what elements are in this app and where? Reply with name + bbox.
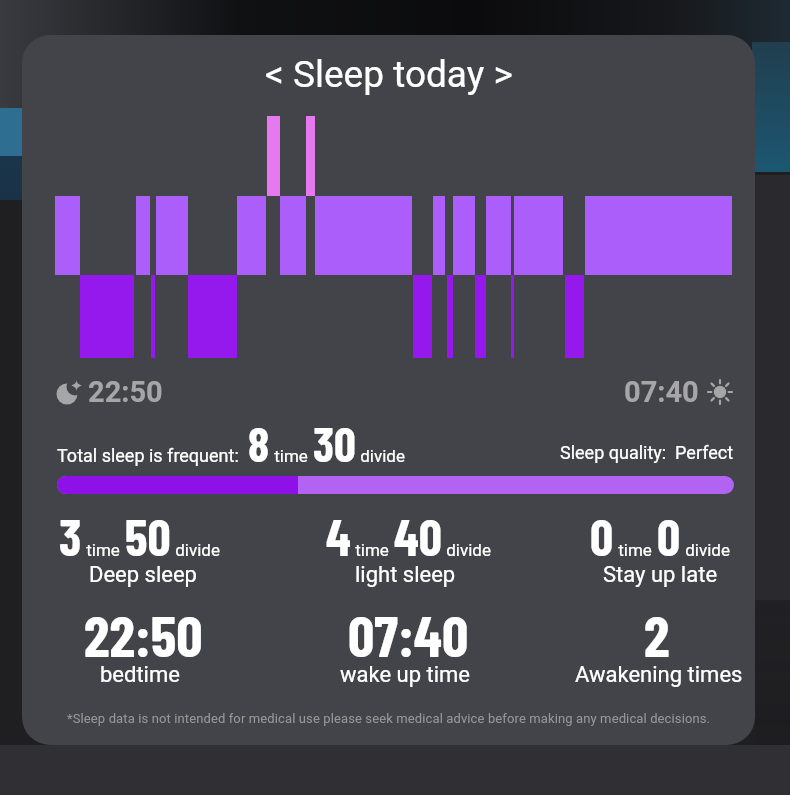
staticText: *Sleep data is not intended for medical … bbox=[67, 711, 711, 726]
staticText: time bbox=[614, 540, 657, 560]
staticText: divide bbox=[356, 446, 405, 466]
staticText: 50 bbox=[125, 505, 171, 566]
button[interactable]: 22:50 bbox=[84, 599, 203, 669]
staticText: time bbox=[270, 446, 313, 466]
button[interactable]: Stay up late bbox=[603, 562, 718, 588]
button[interactable]: bedtime bbox=[100, 662, 180, 688]
button[interactable]: Awakening times bbox=[575, 662, 743, 688]
staticText: 8 bbox=[248, 414, 270, 472]
button[interactable]: Sleep quality: Perfect bbox=[560, 442, 734, 463]
button[interactable]: Deep sleep bbox=[89, 562, 197, 588]
button[interactable]: wake up time bbox=[340, 662, 471, 688]
staticText: 0 bbox=[590, 505, 614, 566]
button[interactable]: 3 bbox=[59, 505, 220, 566]
button[interactable]: Total sleep is frequent: bbox=[57, 414, 405, 472]
staticText: 3 bbox=[59, 505, 82, 566]
button[interactable] bbox=[57, 476, 734, 494]
staticText: 30 bbox=[313, 414, 356, 472]
button[interactable]: light sleep bbox=[355, 562, 456, 588]
button[interactable]: 22:50 bbox=[56, 375, 163, 409]
staticText: divide bbox=[171, 540, 220, 560]
staticText: divide bbox=[681, 540, 730, 560]
button[interactable]: 2 bbox=[644, 599, 670, 669]
staticText: 4 bbox=[326, 505, 351, 566]
staticText: 40 bbox=[394, 505, 442, 566]
staticText: time bbox=[82, 540, 125, 560]
button[interactable]: 0 bbox=[590, 505, 730, 566]
button[interactable]: 07:40 bbox=[348, 599, 469, 669]
staticText: Total sleep is frequent: bbox=[57, 445, 248, 466]
staticText: 07:40 bbox=[624, 375, 699, 409]
button[interactable]: 4 bbox=[326, 505, 491, 566]
staticText: divide bbox=[442, 540, 491, 560]
button[interactable]: < Sleep today > bbox=[265, 53, 513, 96]
staticText: 0 bbox=[657, 505, 681, 566]
button[interactable]: 07:40 bbox=[624, 375, 733, 409]
staticText: time bbox=[351, 540, 394, 560]
staticText: 22:50 bbox=[88, 375, 163, 409]
